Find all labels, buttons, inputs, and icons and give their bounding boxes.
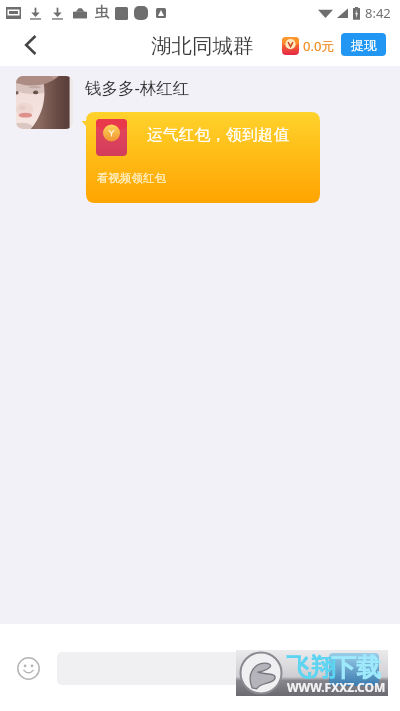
button[interactable]: Avatar xyxy=(16,76,73,129)
staticText: 0.0元 xyxy=(303,37,335,55)
button[interactable]: 钱多多-林红红 xyxy=(85,76,190,99)
staticText: WWW.FXXZ.COM xyxy=(287,679,386,695)
staticText: 8:42 xyxy=(365,4,391,22)
staticText: 提现 xyxy=(351,37,377,53)
button[interactable]: Message input xyxy=(57,652,383,685)
staticText: 飞翔 xyxy=(286,652,336,683)
button[interactable]: Emoji xyxy=(17,657,40,680)
button[interactable]: Red packet wallet xyxy=(282,37,299,55)
staticText: 虫 xyxy=(95,4,109,22)
staticText: 湖北同城群 xyxy=(151,33,254,59)
staticText: 看视频领红包 xyxy=(97,171,166,185)
staticText: 运气红包，领到超值 xyxy=(147,125,290,145)
staticText: 下载 xyxy=(331,652,381,683)
button[interactable]: 运气红包，领到超值 xyxy=(86,112,320,203)
button[interactable]: Back xyxy=(0,26,54,66)
button[interactable]: 提现 xyxy=(341,33,386,56)
